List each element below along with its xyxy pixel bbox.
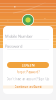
button[interactable]: Forgot Password? xyxy=(7,70,49,74)
button[interactable]: Don't have an account? Sign Up xyxy=(5,78,51,81)
staticText: Forgot Password? xyxy=(16,70,39,74)
staticText: Continue as Guest xyxy=(14,85,41,89)
button[interactable]: Continue as Guest xyxy=(3,85,53,88)
staticText: Mobile Number xyxy=(5,34,33,39)
staticText: Password xyxy=(5,44,22,49)
staticText: LOGIN xyxy=(21,62,34,68)
staticText: Don't have an account? Sign Up xyxy=(6,77,49,81)
button[interactable]: LOGIN xyxy=(7,62,49,68)
